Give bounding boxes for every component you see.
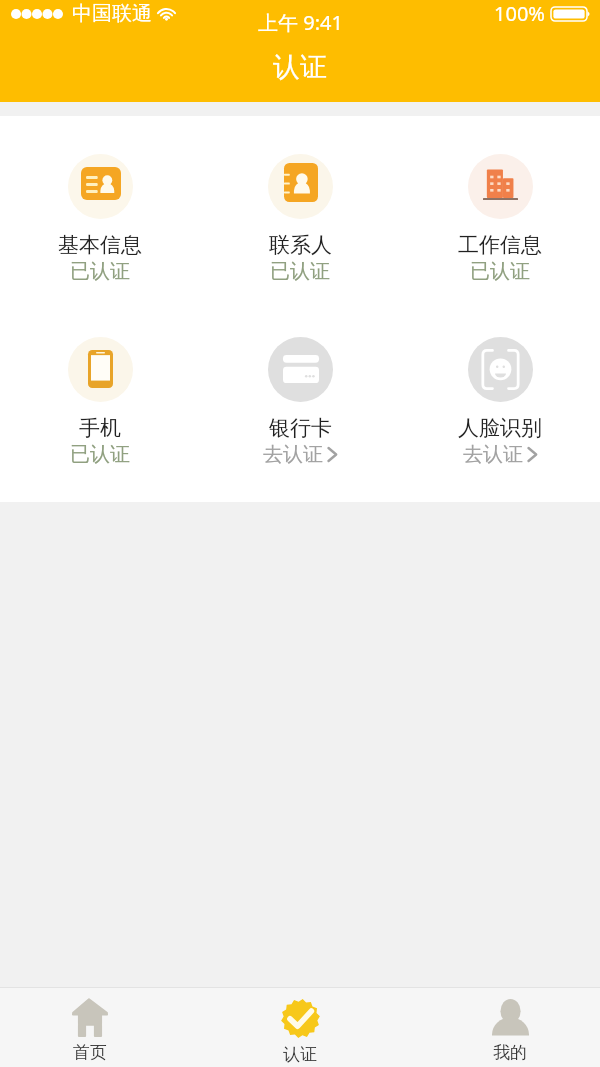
staticText: 认证 [273,50,327,84]
staticText: 上午 9:41 [258,9,343,36]
staticText: 去认证 [263,442,323,467]
button[interactable]: 联系人 [200,116,400,299]
staticText: 100% [494,0,545,27]
staticText: 已认证 [470,259,530,284]
staticText: 工作信息 [458,232,542,258]
button[interactable]: 银行卡 [200,299,400,482]
button[interactable]: Certification [180,988,420,1067]
button[interactable]: 工作信息 [400,116,600,299]
staticText: 我的 [493,1042,527,1063]
staticText: 已认证 [70,259,130,284]
staticText: 手机 [79,415,121,441]
staticText: 去认证 [463,442,523,467]
staticText: 银行卡 [269,415,332,441]
button[interactable]: Profile [420,988,600,1067]
staticText: 中国联通 [72,1,152,26]
staticText: 已认证 [70,442,130,467]
staticText: 认证 [283,1044,317,1065]
button[interactable]: Home [0,988,180,1067]
staticText: 基本信息 [58,232,142,258]
staticText: 首页 [73,1042,107,1063]
staticText: 已认证 [270,259,330,284]
button[interactable]: 基本信息 [0,116,200,299]
staticText: 联系人 [269,232,332,258]
button[interactable]: 人脸识别 [400,299,600,482]
staticText: 人脸识别 [458,415,542,441]
button[interactable]: 手机 [0,299,200,482]
